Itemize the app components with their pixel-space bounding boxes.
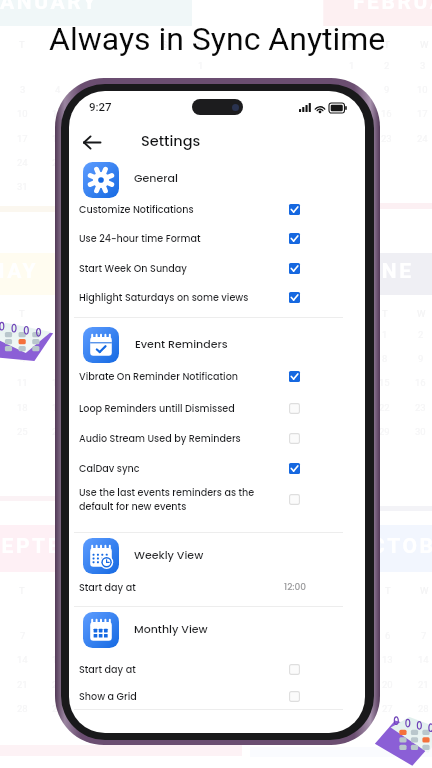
staticText: T [90, 39, 96, 50]
staticText: T [90, 308, 96, 319]
staticText: 15 [195, 108, 206, 119]
staticText: 5 [198, 606, 204, 617]
staticText: 10 [124, 630, 135, 641]
staticText: 24 [417, 133, 428, 144]
button[interactable]: Event Reminders [135, 336, 228, 351]
staticText: 4 [162, 606, 168, 617]
staticText: T [382, 308, 388, 319]
staticText: 22 [379, 402, 390, 413]
button[interactable]: Start day at [74, 655, 343, 683]
button[interactable]: Back [79, 129, 105, 155]
button[interactable]: Loop Reminders untill Dismissed [74, 394, 343, 422]
staticText: 19 [88, 133, 99, 144]
staticText: 7 [20, 630, 26, 641]
staticText: Use the last events reminders as the def… [79, 486, 255, 513]
staticText: S [197, 308, 203, 319]
staticText: T [384, 39, 390, 50]
staticText: 28 [17, 703, 28, 714]
staticText: 16 [381, 108, 392, 119]
staticText: 28 [418, 703, 429, 714]
button[interactable]: CalGrid [83, 612, 119, 648]
staticText: 5 [55, 353, 61, 364]
staticText: 30 [88, 703, 99, 714]
staticText: 15 [159, 377, 170, 388]
staticText: 9 [418, 353, 424, 364]
button[interactable]: Weekly View [134, 547, 204, 562]
staticText: Loop Reminders untill Dismissed [79, 402, 235, 415]
staticText: Settings [141, 131, 201, 151]
button[interactable]: Start day at [74, 573, 343, 601]
staticText: 5 [91, 84, 97, 95]
staticText: 10 [417, 84, 428, 95]
staticText: MAY [0, 259, 38, 284]
staticText: 25 [17, 426, 28, 437]
staticText: 27 [88, 426, 99, 437]
staticText: 7 [162, 84, 168, 95]
staticText: 12 [88, 108, 99, 119]
staticText: 12 [195, 630, 206, 641]
staticText: 3 [127, 606, 133, 617]
staticText: 25 [52, 157, 63, 168]
staticText: 4 [55, 84, 61, 95]
button[interactable]: General [134, 170, 178, 185]
staticText: 4 [20, 353, 26, 364]
button[interactable]: CalCheck [83, 327, 119, 363]
staticText: 18 [52, 133, 63, 144]
staticText: 9 [384, 84, 390, 95]
staticText: 16 [415, 377, 426, 388]
button[interactable]: Customize Notifications [74, 195, 343, 223]
button[interactable]: Start Week On Sunday [74, 254, 343, 282]
button[interactable]: Gear [83, 162, 119, 198]
staticText: Start day at [79, 581, 136, 594]
staticText: 31 [17, 181, 28, 192]
staticText: 9 [91, 630, 97, 641]
button[interactable]: Show a Grid [74, 682, 343, 710]
button[interactable]: Use 24-hour time Format [74, 224, 343, 252]
button[interactable]: Vibrate On Reminder Notification [74, 362, 343, 390]
staticText: F [126, 39, 132, 50]
staticText: 22 [52, 679, 63, 690]
staticText: Always in Sync Anytime [49, 20, 386, 58]
staticText: 7 [421, 630, 427, 641]
button[interactable]: Audio Stream Used by Reminders [74, 424, 343, 452]
staticText: 8 [349, 84, 355, 95]
staticText: 13 [382, 654, 393, 665]
staticText: 29 [52, 703, 63, 714]
staticText: Show a Grid [79, 690, 137, 703]
button[interactable]: CalDav sync [74, 454, 343, 482]
staticText: Use 24-hour time Format [79, 232, 201, 245]
staticText: 22 [159, 402, 170, 413]
staticText: 30 [195, 426, 206, 437]
staticText: 8 [55, 630, 61, 641]
staticText: 20 [382, 679, 393, 690]
button[interactable]: Highlight Saturdays on some views [74, 283, 343, 311]
staticText: T [90, 585, 96, 596]
staticText: JUNE [351, 259, 414, 284]
staticText: M [348, 39, 357, 50]
staticText: 2 [91, 606, 97, 617]
staticText: F [126, 585, 132, 596]
staticText: 15 [379, 377, 390, 388]
staticText: W [417, 308, 426, 319]
staticText: S [162, 308, 168, 319]
staticText: T [385, 585, 391, 596]
button[interactable]: Use the last events reminders as the def… [74, 483, 343, 515]
button[interactable]: CalClock [83, 538, 119, 574]
button[interactable]: Monthly View [134, 621, 208, 636]
staticText: W [420, 39, 429, 50]
staticText: W [55, 39, 64, 50]
staticText: 12:00 [284, 581, 307, 594]
